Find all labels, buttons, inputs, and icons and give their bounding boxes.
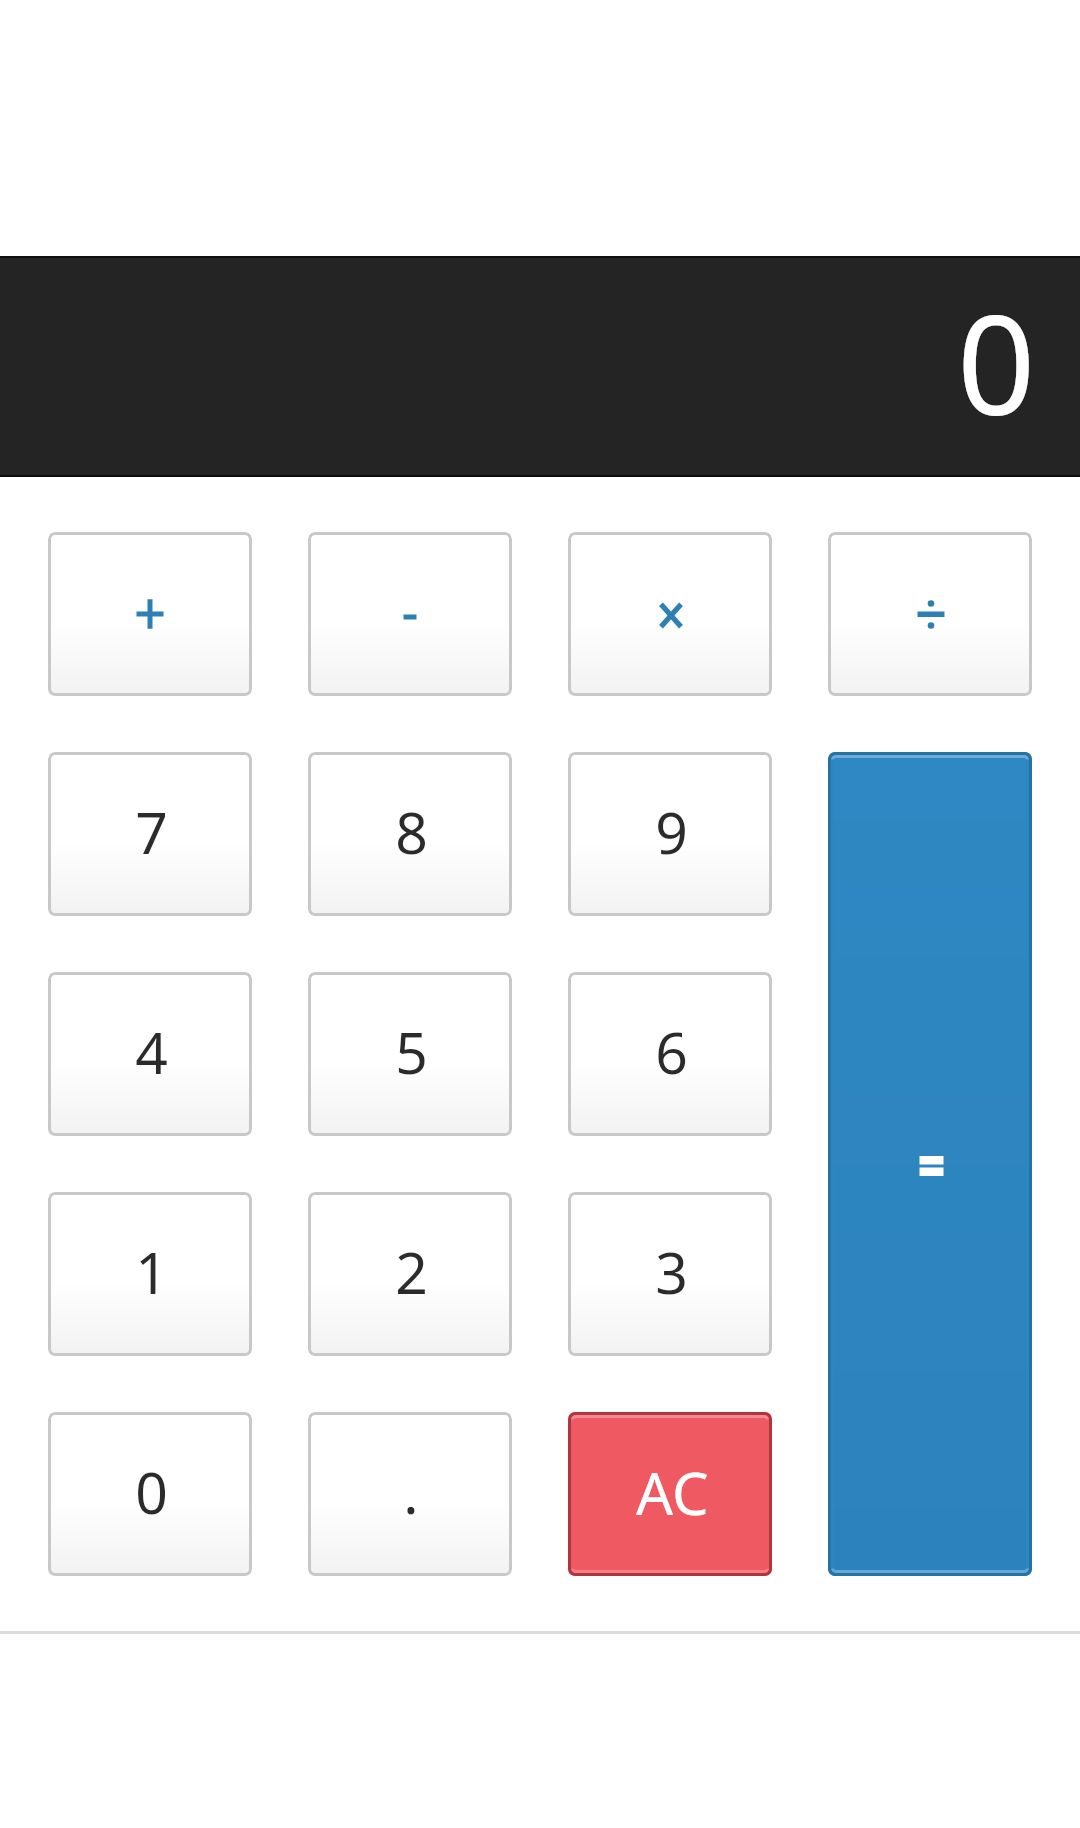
button[interactable]: 0: [48, 1412, 252, 1576]
staticText: 2: [395, 1233, 428, 1311]
staticText: 5: [395, 1013, 428, 1091]
button[interactable]: 6: [568, 972, 772, 1136]
button[interactable]: 9: [568, 752, 772, 916]
staticText: 8: [395, 793, 428, 871]
button[interactable]: .: [308, 1412, 512, 1576]
staticText: 6: [655, 1013, 688, 1091]
button[interactable]: 2: [308, 1192, 512, 1356]
staticText: 9: [655, 793, 688, 871]
button[interactable]: 4: [48, 972, 252, 1136]
button[interactable]: 3: [568, 1192, 772, 1356]
button[interactable]: Multiply: [568, 532, 772, 696]
staticText: 1: [135, 1233, 168, 1311]
staticText: 7: [135, 793, 168, 871]
staticText: 3: [655, 1233, 688, 1311]
staticText: AC: [636, 1453, 709, 1532]
staticText: .: [403, 1453, 419, 1531]
button[interactable]: Divide: [828, 532, 1032, 696]
staticText: 4: [135, 1013, 168, 1091]
button[interactable]: 5: [308, 972, 512, 1136]
button[interactable]: AC: [568, 1412, 772, 1576]
button[interactable]: Subtract: [308, 532, 512, 696]
button[interactable]: 8: [308, 752, 512, 916]
button[interactable]: 1: [48, 1192, 252, 1356]
button[interactable]: Equals: [828, 752, 1032, 1576]
button[interactable]: Add: [48, 532, 252, 696]
staticText: 0: [957, 269, 1036, 456]
button[interactable]: 7: [48, 752, 252, 916]
staticText: 0: [135, 1453, 168, 1531]
